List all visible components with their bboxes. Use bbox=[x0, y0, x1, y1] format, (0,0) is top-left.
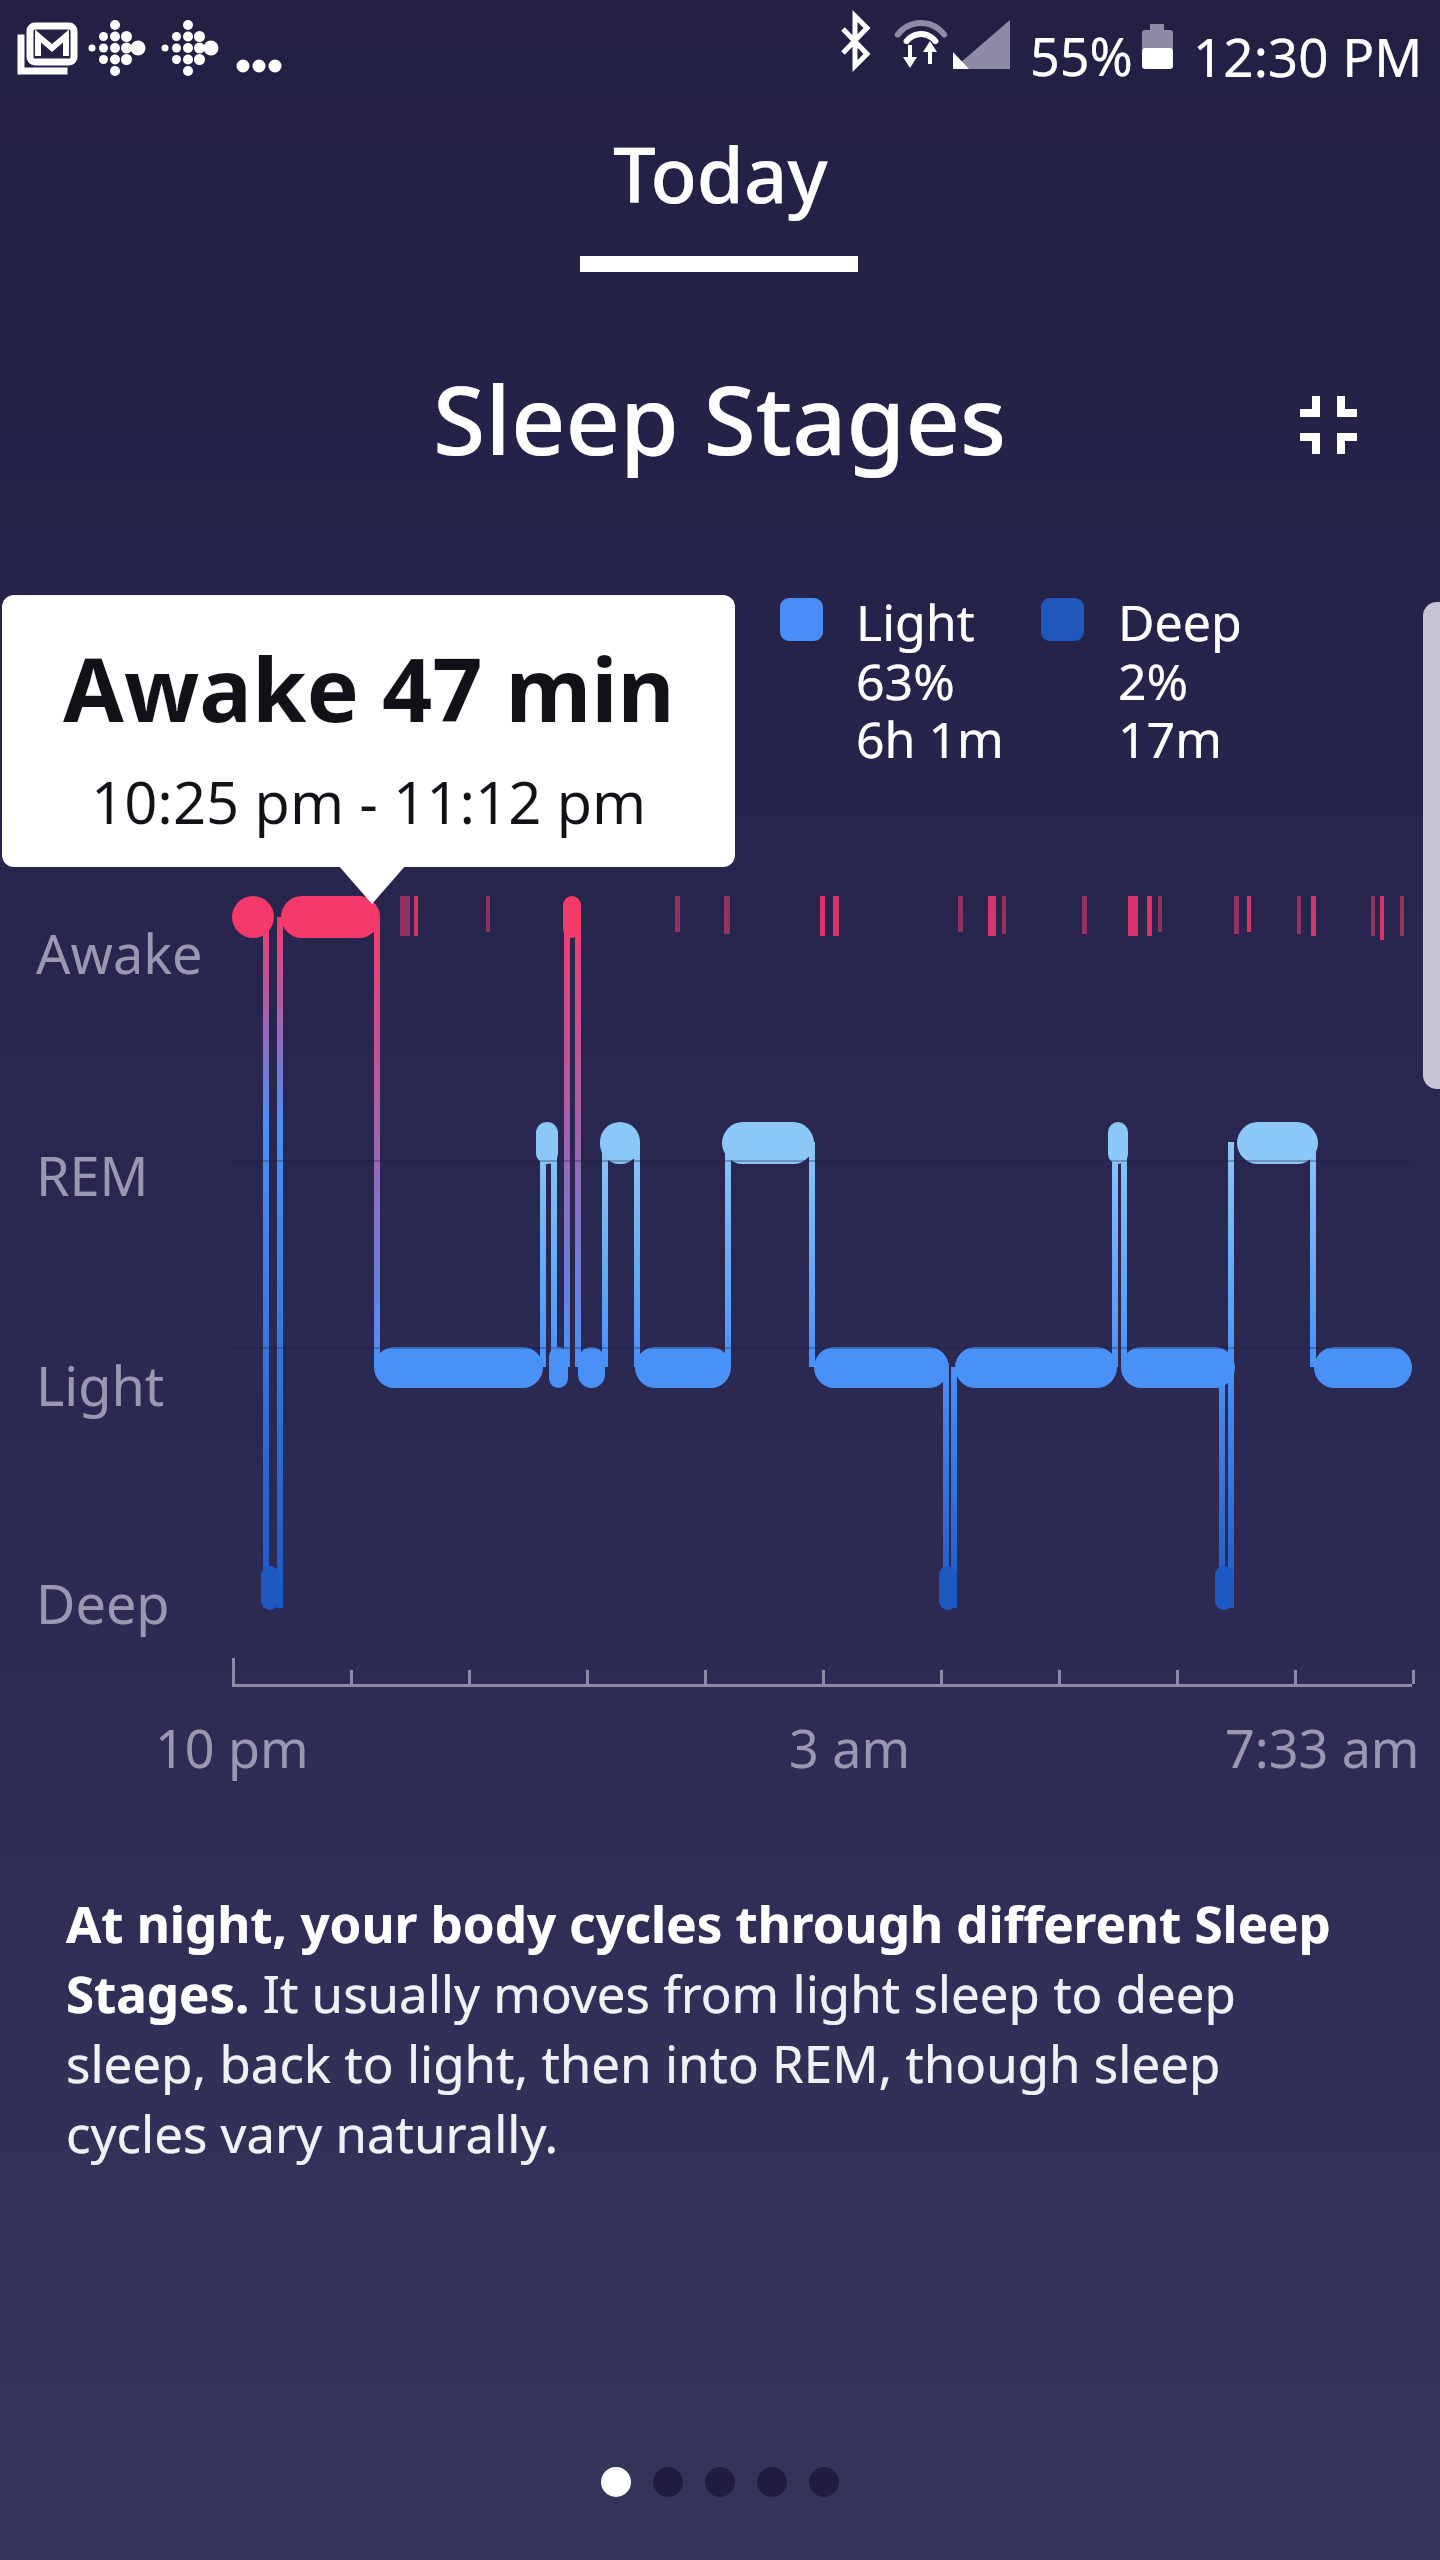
staticText: REM bbox=[36, 1138, 149, 1212]
staticText: 2% bbox=[1118, 647, 1189, 715]
staticText: 10:25 pm - 11:12 pm bbox=[91, 762, 647, 841]
staticText: 17m bbox=[1118, 705, 1222, 773]
staticText: Awake bbox=[36, 916, 203, 990]
staticText: Today bbox=[613, 122, 828, 226]
staticText: Deep bbox=[36, 1566, 170, 1640]
staticText: Light bbox=[856, 588, 975, 656]
staticText: Light bbox=[36, 1348, 165, 1422]
staticText: Deep bbox=[1118, 588, 1242, 656]
staticText: cycles vary naturally. bbox=[66, 2098, 559, 2167]
staticText: 3 am bbox=[789, 1712, 911, 1783]
staticText: 12:30 PM bbox=[1193, 20, 1423, 92]
staticText: Awake 47 min bbox=[63, 628, 675, 748]
staticText: 6h 1m bbox=[856, 705, 1004, 773]
staticText: Stages. It usually moves from light slee… bbox=[66, 1958, 1236, 2027]
staticText: 10 pm bbox=[155, 1712, 309, 1783]
staticText: Sleep Stages bbox=[433, 353, 1007, 482]
staticText: 7:33 am bbox=[1225, 1712, 1420, 1783]
staticText: sleep, back to light, then into REM, tho… bbox=[66, 2028, 1221, 2097]
staticText: 63% bbox=[856, 647, 955, 715]
button[interactable] bbox=[2, 595, 735, 867]
staticText: 55% bbox=[1030, 20, 1133, 91]
button[interactable] bbox=[1284, 380, 1372, 468]
staticText: At night, your body cycles through diffe… bbox=[66, 1888, 1331, 1957]
